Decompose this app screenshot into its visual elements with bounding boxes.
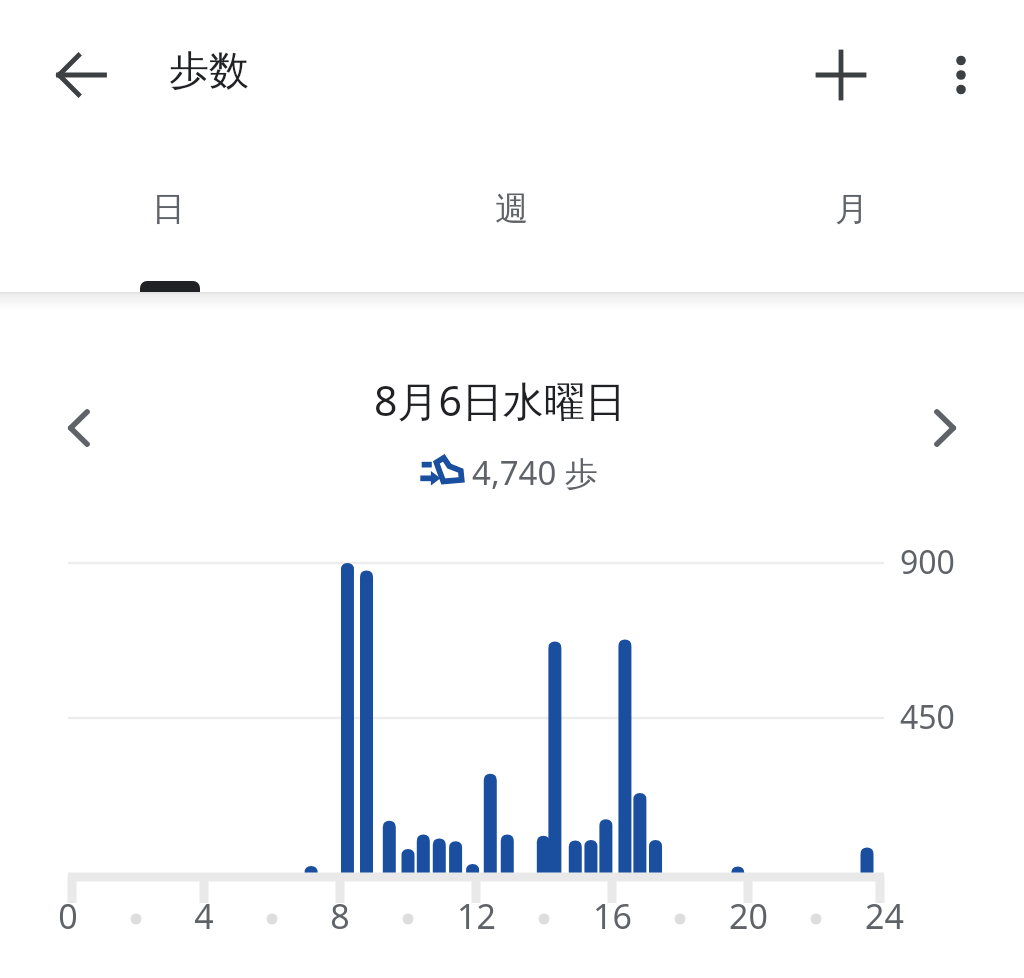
button[interactable]: 週: [391, 160, 631, 292]
staticText: 月: [835, 188, 868, 230]
staticText: 4: [194, 893, 214, 939]
button[interactable]: Add: [801, 35, 881, 115]
staticText: 16: [593, 893, 632, 939]
button[interactable]: Next day: [908, 392, 980, 464]
staticText: 0: [58, 893, 78, 939]
button[interactable]: 日: [48, 160, 288, 292]
staticText: 24: [865, 893, 904, 939]
staticText: 900: [900, 540, 955, 584]
staticText: 8月6日水曜日: [374, 372, 626, 428]
staticText: 4,740 歩: [472, 450, 598, 495]
staticText: 450: [900, 695, 955, 739]
staticText: 週: [495, 188, 528, 230]
button[interactable]: 4,740 歩: [418, 450, 598, 495]
button[interactable]: 月: [731, 160, 971, 292]
button[interactable]: Previous day: [44, 392, 116, 464]
staticText: 12: [457, 893, 496, 939]
staticText: 20: [729, 893, 768, 939]
staticText: 歩数: [169, 45, 249, 95]
staticText: 日: [152, 188, 185, 230]
staticText: 8: [330, 893, 350, 939]
button[interactable]: More options: [921, 35, 1001, 115]
button[interactable]: Back: [41, 35, 121, 115]
